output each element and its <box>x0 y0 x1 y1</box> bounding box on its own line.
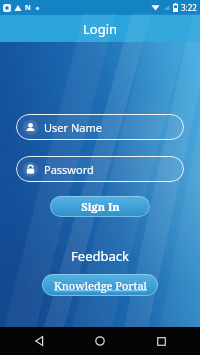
staticText: Login <box>83 20 118 38</box>
staticText: User Name <box>44 120 102 135</box>
button[interactable]: Sign In <box>50 196 150 217</box>
button[interactable]: Password <box>16 156 184 182</box>
button[interactable]: Back <box>17 327 61 355</box>
staticText: Knowledge Portal <box>54 278 147 293</box>
staticText: N <box>25 3 31 13</box>
button[interactable]: Home <box>78 327 122 355</box>
staticText: 3:22 <box>181 2 197 13</box>
staticText: Sign In <box>81 199 120 214</box>
button[interactable]: User Name <box>16 114 184 140</box>
button[interactable]: Recent apps <box>139 327 183 355</box>
button[interactable]: Feedback <box>71 247 129 265</box>
staticText: Password <box>44 162 94 177</box>
button[interactable]: Knowledge Portal <box>42 274 158 296</box>
